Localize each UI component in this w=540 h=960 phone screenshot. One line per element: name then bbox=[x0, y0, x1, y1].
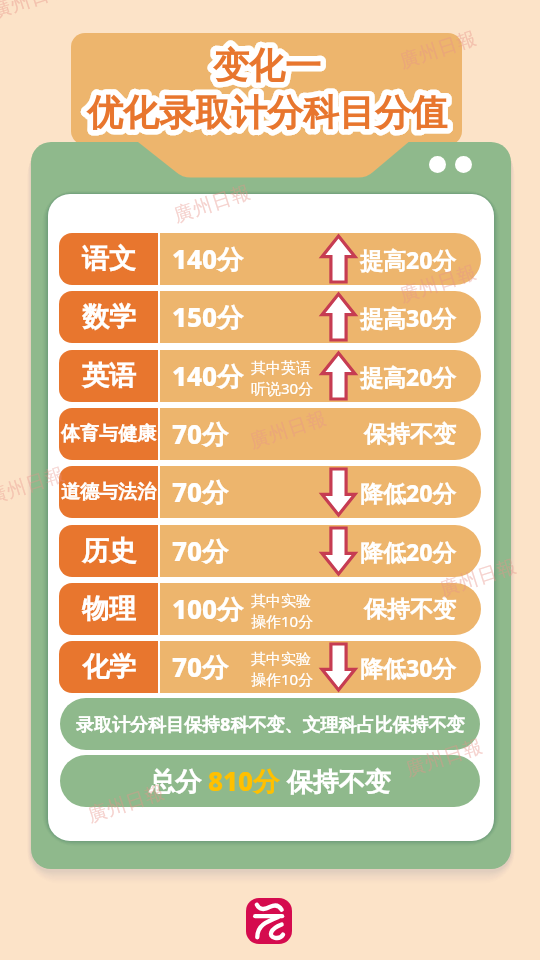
staticText: 操作10分 bbox=[251, 611, 314, 631]
button[interactable]: 140分 bbox=[160, 350, 481, 402]
button[interactable]: 语文 bbox=[59, 233, 158, 285]
staticText: 语文 bbox=[82, 242, 136, 276]
button[interactable]: 70分 bbox=[160, 408, 481, 460]
staticText: 提高30分 bbox=[360, 302, 456, 333]
staticText: 70分 bbox=[172, 474, 229, 510]
button[interactable]: 历史 bbox=[59, 525, 158, 577]
button[interactable]: 道德与法治 bbox=[59, 466, 158, 518]
button[interactable]: 化学 bbox=[59, 641, 158, 693]
staticText: 优化录取计分科目分值 bbox=[87, 90, 447, 135]
staticText: 100分 bbox=[172, 591, 244, 627]
staticText: 提高20分 bbox=[360, 361, 456, 392]
staticText: 其中英语 bbox=[251, 359, 311, 378]
button[interactable]: 英语 bbox=[59, 350, 158, 402]
staticText: 操作10分 bbox=[251, 669, 314, 689]
staticText: 体育与健康 bbox=[61, 422, 156, 446]
staticText: 70分 bbox=[172, 533, 229, 569]
staticText: 降低20分 bbox=[360, 536, 456, 567]
staticText: 变化一 bbox=[213, 43, 321, 88]
staticText: 廣州日報 bbox=[0, 0, 72, 24]
button[interactable]: 变化一 bbox=[71, 33, 462, 145]
button[interactable]: 录取计分科目保持8科不变、文理科占比保持不变 bbox=[60, 698, 480, 750]
button[interactable]: 物理 bbox=[59, 583, 158, 635]
staticText: 廣州日報 bbox=[402, 734, 486, 782]
button[interactable]: 体育与健康 bbox=[59, 408, 158, 460]
button[interactable]: 总分 bbox=[60, 755, 480, 807]
staticText: 廣州日報 bbox=[246, 406, 330, 454]
staticText: 优化录取计分科目分值 bbox=[87, 90, 447, 135]
staticText: 廣州日報 bbox=[0, 462, 68, 510]
staticText: 物理 bbox=[82, 592, 136, 626]
button[interactable]: 70分 bbox=[160, 525, 481, 577]
staticText: 化学 bbox=[82, 650, 136, 684]
button[interactable]: 70分 bbox=[160, 466, 481, 518]
staticText: 英语 bbox=[82, 359, 136, 393]
staticText: 数学 bbox=[82, 300, 136, 334]
staticText: 录取计分科目保持8科不变、文理科占比保持不变 bbox=[76, 712, 465, 737]
staticText: 廣州日報 bbox=[396, 26, 480, 74]
button[interactable]: 100分 bbox=[160, 583, 481, 635]
staticText: 廣州日報 bbox=[396, 260, 480, 308]
staticText: 降低30分 bbox=[360, 652, 456, 683]
staticText: 70分 bbox=[172, 649, 229, 685]
button[interactable]: 150分 bbox=[160, 291, 481, 343]
staticText: 道德与法治 bbox=[61, 480, 156, 504]
staticText: 810分 bbox=[208, 763, 280, 799]
button[interactable]: 广州日报 logo bbox=[246, 898, 292, 944]
staticText: 保持不变 bbox=[280, 763, 391, 799]
staticText: 廣州日報 bbox=[170, 180, 254, 228]
staticText: 降低20分 bbox=[360, 477, 456, 508]
button[interactable]: 140分 bbox=[160, 233, 481, 285]
staticText: 廣州日報 bbox=[436, 554, 520, 602]
staticText: 变化一 bbox=[213, 43, 321, 88]
staticText: 140分 bbox=[172, 358, 244, 394]
staticText: 保持不变 bbox=[364, 420, 456, 449]
staticText: 听说30分 bbox=[251, 378, 314, 398]
staticText: 其中实验 bbox=[251, 650, 311, 669]
staticText: 其中实验 bbox=[251, 592, 311, 611]
staticText: 历史 bbox=[82, 534, 136, 568]
button[interactable]: 70分 bbox=[160, 641, 481, 693]
staticText: 140分 bbox=[172, 241, 244, 277]
staticText: 70分 bbox=[172, 416, 229, 452]
staticText: 廣州日報 bbox=[84, 780, 168, 828]
staticText: 提高20分 bbox=[360, 244, 456, 275]
staticText: 保持不变 bbox=[364, 595, 456, 624]
staticText: 总分 bbox=[149, 763, 208, 799]
staticText: 150分 bbox=[172, 299, 244, 335]
button[interactable]: 数学 bbox=[59, 291, 158, 343]
